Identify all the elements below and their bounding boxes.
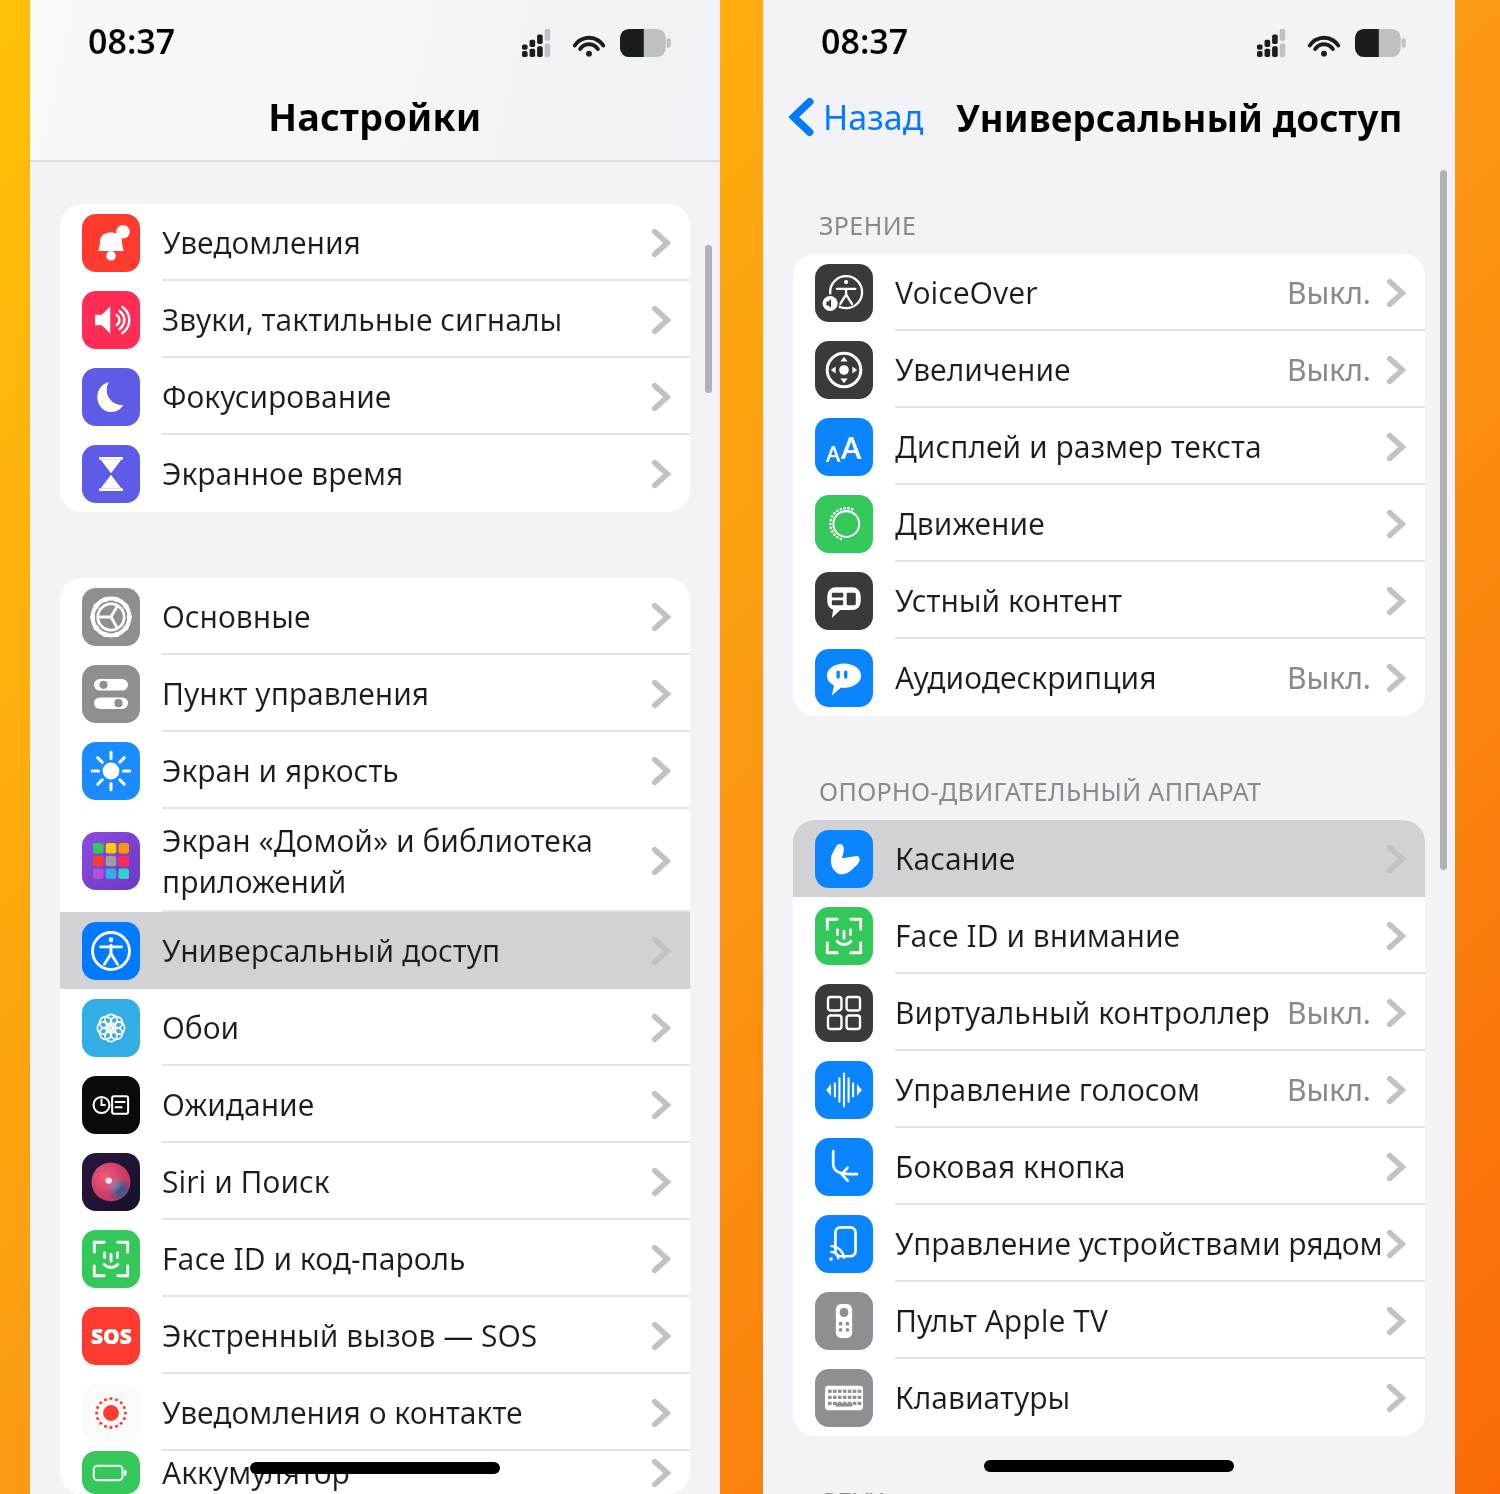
button[interactable]: Управление голосом <box>793 1051 1425 1128</box>
staticText: Настройки <box>268 90 482 142</box>
button[interactable]: Универсальный доступ <box>60 912 690 989</box>
button[interactable]: Фокусирование <box>60 358 690 435</box>
staticText: ЗРЕНИЕ <box>819 208 917 242</box>
staticText: VoiceOver <box>895 272 1038 313</box>
staticText: Пульт Apple TV <box>895 1300 1108 1341</box>
staticText: Управление голосом <box>895 1069 1201 1110</box>
staticText: Универсальный доступ <box>162 930 501 971</box>
staticText: Основные <box>162 596 311 637</box>
staticText: Пункт управления <box>162 673 430 714</box>
staticText: Ожидание <box>162 1084 315 1125</box>
button[interactable]: Уведомления о контакте <box>60 1374 690 1451</box>
staticText: Фокусирование <box>162 376 392 417</box>
button[interactable]: Экранное время <box>60 435 690 512</box>
staticText: Движение <box>895 503 1045 544</box>
staticText: СЛУХ <box>819 1484 885 1494</box>
staticText: Экстренный вызов — SOS <box>162 1315 538 1356</box>
staticText: Face ID и код-пароль <box>162 1238 466 1279</box>
staticText: Устный контент <box>895 580 1123 621</box>
staticText: Обои <box>162 1007 240 1048</box>
button[interactable]: Виртуальный контроллер <box>793 974 1425 1051</box>
staticText: Уведомления о контакте <box>162 1392 523 1433</box>
staticText: Уведомления <box>162 222 361 263</box>
staticText: SOS <box>91 1322 132 1351</box>
staticText: Касание <box>895 838 1016 879</box>
staticText: Универсальный доступ <box>956 92 1403 142</box>
staticText: Увеличение <box>895 349 1071 390</box>
button[interactable]: Пункт управления <box>60 655 690 732</box>
staticText: Управление устройствами рядом <box>895 1223 1383 1264</box>
staticText: Выкл. <box>1287 1069 1371 1110</box>
button[interactable]: Боковая кнопка <box>793 1128 1425 1205</box>
staticText: Выкл. <box>1287 992 1371 1033</box>
staticText: Аккумулятор <box>162 1452 350 1493</box>
button[interactable]: Основные <box>60 578 690 655</box>
staticText: Siri и Поиск <box>162 1161 330 1202</box>
button[interactable]: Назад <box>785 90 930 144</box>
staticText: 08:37 <box>88 18 176 64</box>
button[interactable]: Уведомления <box>60 204 690 281</box>
button[interactable]: Face ID и код-пароль <box>60 1220 690 1297</box>
button[interactable]: A <box>793 408 1425 485</box>
button[interactable]: Клавиатуры <box>793 1359 1425 1436</box>
staticText: Виртуальный контроллер <box>895 992 1270 1033</box>
staticText: 08:37 <box>821 18 909 64</box>
staticText: A <box>826 438 841 468</box>
staticText: Аудиодескрипция <box>895 657 1157 698</box>
button[interactable]: Касание <box>793 820 1425 897</box>
button[interactable]: Ожидание <box>60 1066 690 1143</box>
staticText: Боковая кнопка <box>895 1146 1126 1187</box>
staticText: приложений <box>162 861 347 902</box>
button[interactable]: Устный контент <box>793 562 1425 639</box>
staticText: Клавиатуры <box>895 1377 1071 1418</box>
staticText: Дисплей и размер текста <box>895 426 1262 467</box>
button[interactable]: SOS <box>60 1297 690 1374</box>
button[interactable]: Звуки, тактильные сигналы <box>60 281 690 358</box>
staticText: Экран и яркость <box>162 750 399 791</box>
staticText: Назад <box>823 94 924 140</box>
button[interactable]: Пульт Apple TV <box>793 1282 1425 1359</box>
staticText: ОПОРНО-ДВИГАТЕЛЬНЫЙ АППАРАТ <box>819 774 1262 808</box>
button[interactable]: Аудиодескрипция <box>793 639 1425 716</box>
button[interactable]: Управление устройствами рядом <box>793 1205 1425 1282</box>
staticText: A <box>841 426 862 468</box>
staticText: Звуки, тактильные сигналы <box>162 299 563 340</box>
button[interactable]: Аккумулятор <box>60 1451 690 1494</box>
button[interactable]: Движение <box>793 485 1425 562</box>
button[interactable]: Обои <box>60 989 690 1066</box>
staticText: Выкл. <box>1287 349 1371 390</box>
staticText: Face ID и внимание <box>895 915 1181 956</box>
button[interactable]: Экран и яркость <box>60 732 690 809</box>
staticText: Экранное время <box>162 453 404 494</box>
staticText: Выкл. <box>1287 657 1371 698</box>
button[interactable]: Увеличение <box>793 331 1425 408</box>
button[interactable]: Face ID и внимание <box>793 897 1425 974</box>
button[interactable]: Siri и Поиск <box>60 1143 690 1220</box>
button[interactable]: VoiceOver <box>793 254 1425 331</box>
staticText: Выкл. <box>1287 272 1371 313</box>
staticText: Экран «Домой» и библиотека <box>162 820 593 861</box>
button[interactable]: Экран «Домой» и библиотека <box>60 809 690 912</box>
